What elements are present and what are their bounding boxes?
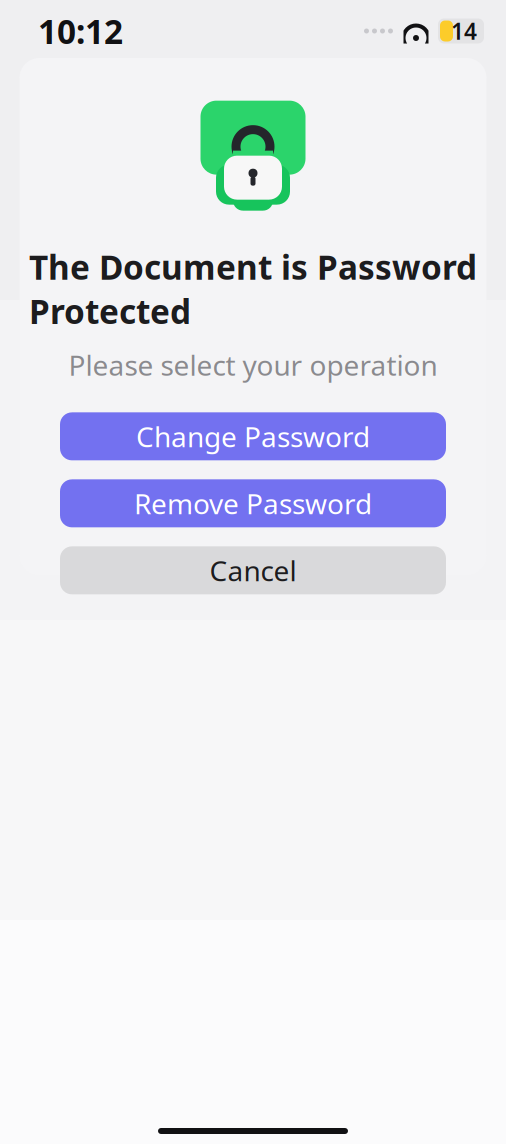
- button[interactable]: Change Password: [60, 412, 446, 460]
- staticText: 14: [451, 16, 477, 46]
- staticText: Change Password: [136, 418, 370, 455]
- staticText: Cancel: [209, 552, 296, 589]
- staticText: Remove Password: [134, 485, 372, 522]
- button[interactable]: Remove Password: [60, 479, 446, 527]
- staticText: Please select your operation: [68, 346, 437, 383]
- staticText: The Document is Password Protected: [29, 245, 477, 333]
- button[interactable]: Cancel: [60, 546, 446, 594]
- staticText: 10:12: [38, 9, 123, 53]
